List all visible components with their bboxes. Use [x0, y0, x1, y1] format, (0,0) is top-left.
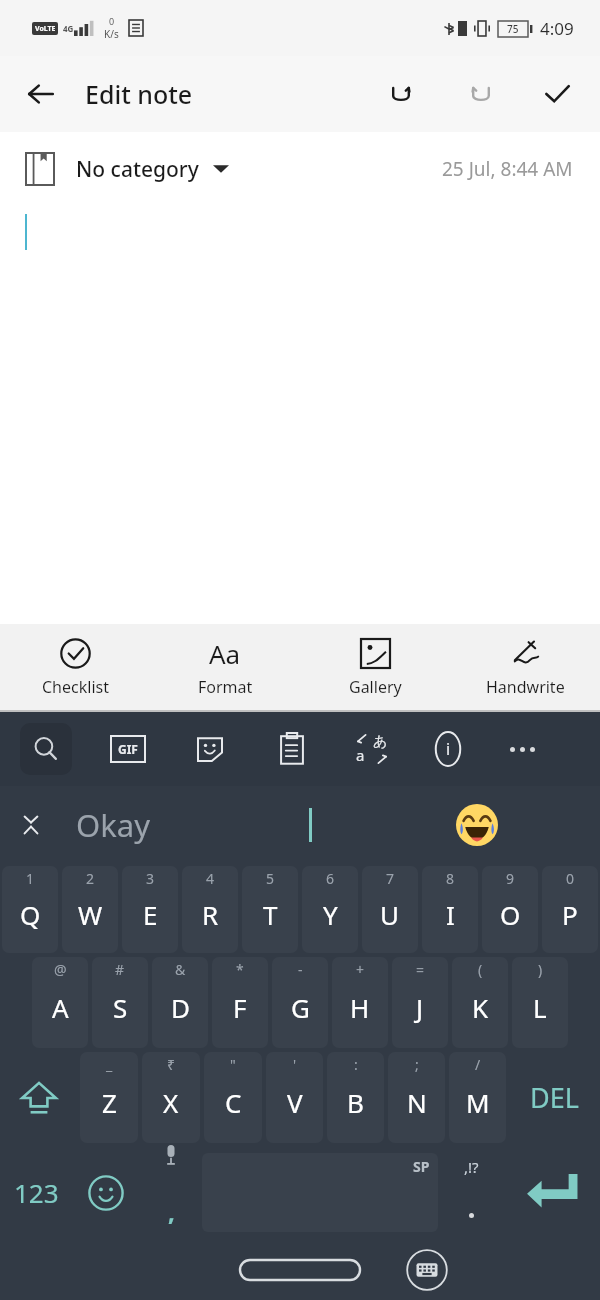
button[interactable]: =	[392, 957, 448, 1048]
button[interactable]: 8	[422, 866, 478, 953]
button[interactable]: 0	[542, 866, 598, 953]
button[interactable]: )	[512, 957, 568, 1048]
staticText: (	[478, 960, 483, 979]
button[interactable]: ;	[388, 1052, 445, 1143]
button[interactable]: 2	[62, 866, 118, 953]
button[interactable]: Stickers	[184, 723, 236, 775]
button[interactable]: No category	[26, 153, 229, 185]
button[interactable]: Aa	[150, 624, 300, 710]
button[interactable]: 7	[362, 866, 418, 953]
staticText: 75	[507, 22, 519, 36]
staticText: Y	[323, 897, 338, 932]
staticText: @	[54, 960, 67, 979]
button[interactable]: Punctuation	[438, 1145, 504, 1240]
button[interactable]: +	[332, 957, 388, 1048]
staticText: Handwrite	[486, 676, 565, 698]
button[interactable]: *	[212, 957, 268, 1048]
staticText: C	[225, 1085, 242, 1120]
button[interactable]: :	[327, 1052, 384, 1143]
button[interactable]: Laughing emoji	[454, 802, 500, 848]
staticText: SP	[413, 1157, 430, 1176]
button[interactable]: 6	[302, 866, 358, 953]
button[interactable]: -	[272, 957, 328, 1048]
button[interactable]: Clipboard	[266, 723, 318, 775]
staticText: "	[230, 1055, 236, 1074]
button[interactable]: Back	[14, 67, 68, 121]
staticText: 3	[146, 869, 155, 888]
staticText: DEL	[530, 1079, 579, 1116]
button[interactable]: '	[266, 1052, 323, 1143]
staticText: M	[466, 1085, 490, 1120]
staticText: S	[113, 990, 128, 1025]
staticText: ₹	[167, 1055, 176, 1074]
button[interactable]: Handwrite	[450, 624, 600, 710]
button[interactable]: /	[449, 1052, 506, 1143]
button[interactable]: Emoji	[72, 1145, 140, 1240]
button[interactable]: Collapse suggestions	[10, 804, 52, 846]
staticText: 4G	[63, 23, 74, 34]
button[interactable]: #	[92, 957, 148, 1048]
staticText: P	[562, 897, 578, 932]
button[interactable]: Gallery	[300, 624, 450, 710]
staticText: 0	[109, 15, 115, 27]
button[interactable]: (	[452, 957, 508, 1048]
button[interactable]: 5	[242, 866, 298, 953]
button[interactable]: 3	[122, 866, 178, 953]
staticText: *	[236, 960, 244, 979]
staticText: 9	[506, 869, 515, 888]
staticText: :	[354, 1055, 358, 1074]
staticText: E	[143, 897, 158, 932]
button[interactable]: Numbers	[0, 1145, 72, 1240]
button[interactable]: 9	[482, 866, 538, 953]
staticText: O	[500, 897, 521, 932]
staticText: B	[347, 1085, 364, 1120]
staticText: 5	[266, 869, 275, 888]
button[interactable]: Translate	[346, 723, 398, 775]
staticText: 0	[566, 869, 575, 888]
button[interactable]: Save note	[530, 67, 584, 121]
button[interactable]: Voice input and comma	[140, 1145, 202, 1240]
staticText: -	[298, 960, 303, 979]
button[interactable]: ₹	[142, 1052, 200, 1143]
button[interactable]: &	[152, 957, 208, 1048]
staticText: U	[380, 897, 400, 932]
button[interactable]: 4	[182, 866, 238, 953]
staticText: Q	[20, 897, 41, 932]
staticText: /	[475, 1055, 481, 1074]
staticText: Aa	[209, 636, 241, 670]
staticText: '	[293, 1055, 297, 1074]
staticText: _	[106, 1055, 113, 1074]
button[interactable]: Hide keyboard	[406, 1249, 448, 1291]
staticText: 7	[386, 869, 395, 888]
button[interactable]: Delete	[508, 1050, 600, 1145]
button[interactable]: Redo	[454, 67, 508, 121]
button[interactable]: @	[32, 957, 88, 1048]
staticText: W	[78, 897, 103, 932]
staticText: Format	[198, 676, 253, 698]
button[interactable]: More options	[496, 723, 548, 775]
staticText: ;	[415, 1055, 419, 1074]
staticText: +	[356, 960, 365, 979]
staticText: No category	[76, 155, 199, 184]
button[interactable]: _	[80, 1052, 138, 1143]
button[interactable]: Space	[202, 1153, 438, 1232]
staticText: 6	[326, 869, 335, 888]
button[interactable]: Checklist	[0, 624, 150, 710]
button[interactable]: Home	[240, 1260, 360, 1280]
button[interactable]: Okay	[76, 804, 150, 846]
staticText: N	[407, 1085, 427, 1120]
button[interactable]: Shift	[0, 1050, 78, 1145]
button[interactable]: Search	[20, 723, 72, 775]
button[interactable]: 1	[2, 866, 58, 953]
staticText: A	[52, 990, 69, 1025]
staticText: F	[233, 990, 247, 1025]
staticText: Checklist	[42, 676, 109, 698]
button[interactable]: Undo	[374, 67, 428, 121]
button[interactable]: Info	[422, 723, 474, 775]
staticText: Gallery	[349, 676, 402, 698]
staticText: 8	[446, 869, 455, 888]
button[interactable]: "	[204, 1052, 262, 1143]
button[interactable]: Enter	[504, 1145, 600, 1240]
button[interactable]: GIF	[102, 723, 154, 775]
staticText: a	[356, 745, 365, 765]
